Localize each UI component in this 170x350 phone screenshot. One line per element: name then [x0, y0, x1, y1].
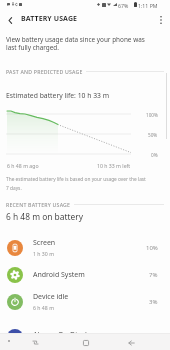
- staticText: View battery usage data since your phone…: [6, 35, 145, 52]
- staticText: 6 h 48 m: [33, 304, 55, 311]
- staticText: Screen: [33, 238, 56, 248]
- button[interactable]: Android System: [0, 261, 170, 288]
- button[interactable]: Always On Display: [0, 321, 170, 339]
- staticText: 1:11 PM: [138, 2, 158, 9]
- staticText: The estimated battery life is based on y…: [6, 176, 146, 191]
- staticText: 2%: [149, 331, 158, 339]
- button[interactable]: Navigate up: [1, 11, 19, 29]
- staticText: 10 h 33 m left: [97, 162, 131, 169]
- staticText: 1 h 30 m: [33, 250, 55, 257]
- staticText: RECENT BATTERY USAGE: [6, 201, 71, 208]
- staticText: 3%: [149, 298, 158, 306]
- staticText: Always On Display: [33, 329, 95, 339]
- button[interactable]: More options: [152, 11, 170, 29]
- staticText: BATTERY USAGE: [21, 14, 78, 24]
- staticText: 6 h 48 m on battery: [6, 211, 84, 222]
- staticText: 6 h 48 m ago: [7, 162, 39, 169]
- staticText: 67%: [118, 2, 129, 9]
- button[interactable]: Device idle: [0, 288, 170, 315]
- staticText: 10%: [146, 244, 158, 252]
- button[interactable]: Back: [123, 334, 140, 350]
- staticText: Estimated battery life: 10 h 33 m: [6, 91, 110, 100]
- staticText: 7%: [149, 271, 158, 279]
- staticText: Device idle: [33, 292, 69, 302]
- staticText: PAST AND PREDICTED USAGE: [6, 68, 83, 75]
- staticText: 100%: [146, 112, 158, 118]
- button[interactable]: Hide navigation bar: [3, 335, 14, 346]
- button[interactable]: Screen: [0, 234, 170, 261]
- staticText: 0%: [151, 152, 158, 158]
- staticText: 50%: [148, 132, 158, 138]
- staticText: Android System: [33, 270, 85, 280]
- button[interactable]: Recent apps: [27, 334, 44, 350]
- button[interactable]: Home: [77, 334, 94, 350]
